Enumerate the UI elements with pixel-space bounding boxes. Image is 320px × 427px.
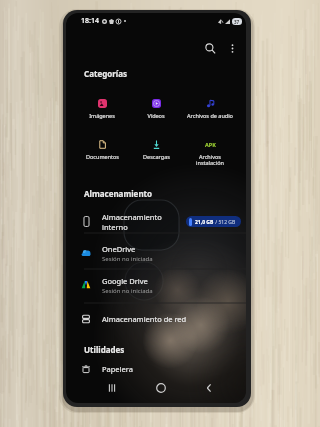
button[interactable]: More options <box>221 37 243 59</box>
button[interactable]: Search <box>199 37 221 59</box>
staticText: Utilidades <box>84 344 125 355</box>
staticText: / 512 GB <box>214 219 236 226</box>
staticText: Vídeos <box>147 112 165 119</box>
staticText: Almacenamiento interno <box>102 212 162 232</box>
button[interactable]: Back <box>197 377 221 399</box>
staticText: Almacenamiento <box>84 188 153 199</box>
button[interactable]: Imágenes <box>75 99 129 119</box>
staticText: 37 <box>234 19 240 25</box>
button[interactable]: Almacenamiento de red <box>66 307 246 331</box>
staticText: 18:14 <box>81 16 99 26</box>
button[interactable]: Descargas <box>129 140 183 160</box>
staticText: Google Drive <box>102 276 148 286</box>
staticText: OneDrive <box>102 244 136 254</box>
staticText: Categorías <box>84 68 128 79</box>
staticText: Documentos <box>86 153 119 160</box>
button[interactable]: Vídeos <box>129 99 183 119</box>
staticText: Archivos de audio <box>187 112 233 119</box>
button[interactable]: APK <box>183 140 237 167</box>
button[interactable]: Documentos <box>75 140 129 160</box>
button[interactable]: Recents <box>100 377 124 399</box>
button[interactable]: OneDrive <box>66 239 246 267</box>
button[interactable]: Google Drive <box>66 271 246 299</box>
staticText: Almacenamiento de red <box>102 314 187 324</box>
button[interactable]: Papelera <box>66 358 246 380</box>
staticText: Descargas <box>143 153 170 160</box>
staticText: Archivos instalación <box>196 153 224 167</box>
button[interactable]: Home <box>149 377 173 399</box>
staticText: 21,0 GB <box>195 219 214 226</box>
button[interactable]: Almacenamiento interno <box>66 205 246 238</box>
button[interactable]: Archivos de audio <box>183 99 237 119</box>
staticText: Papelera <box>102 364 133 374</box>
staticText: Imágenes <box>89 112 115 119</box>
staticText: Sesión no iniciada <box>102 255 153 263</box>
staticText: APK <box>205 141 216 148</box>
staticText: Sesión no iniciada <box>102 287 153 295</box>
